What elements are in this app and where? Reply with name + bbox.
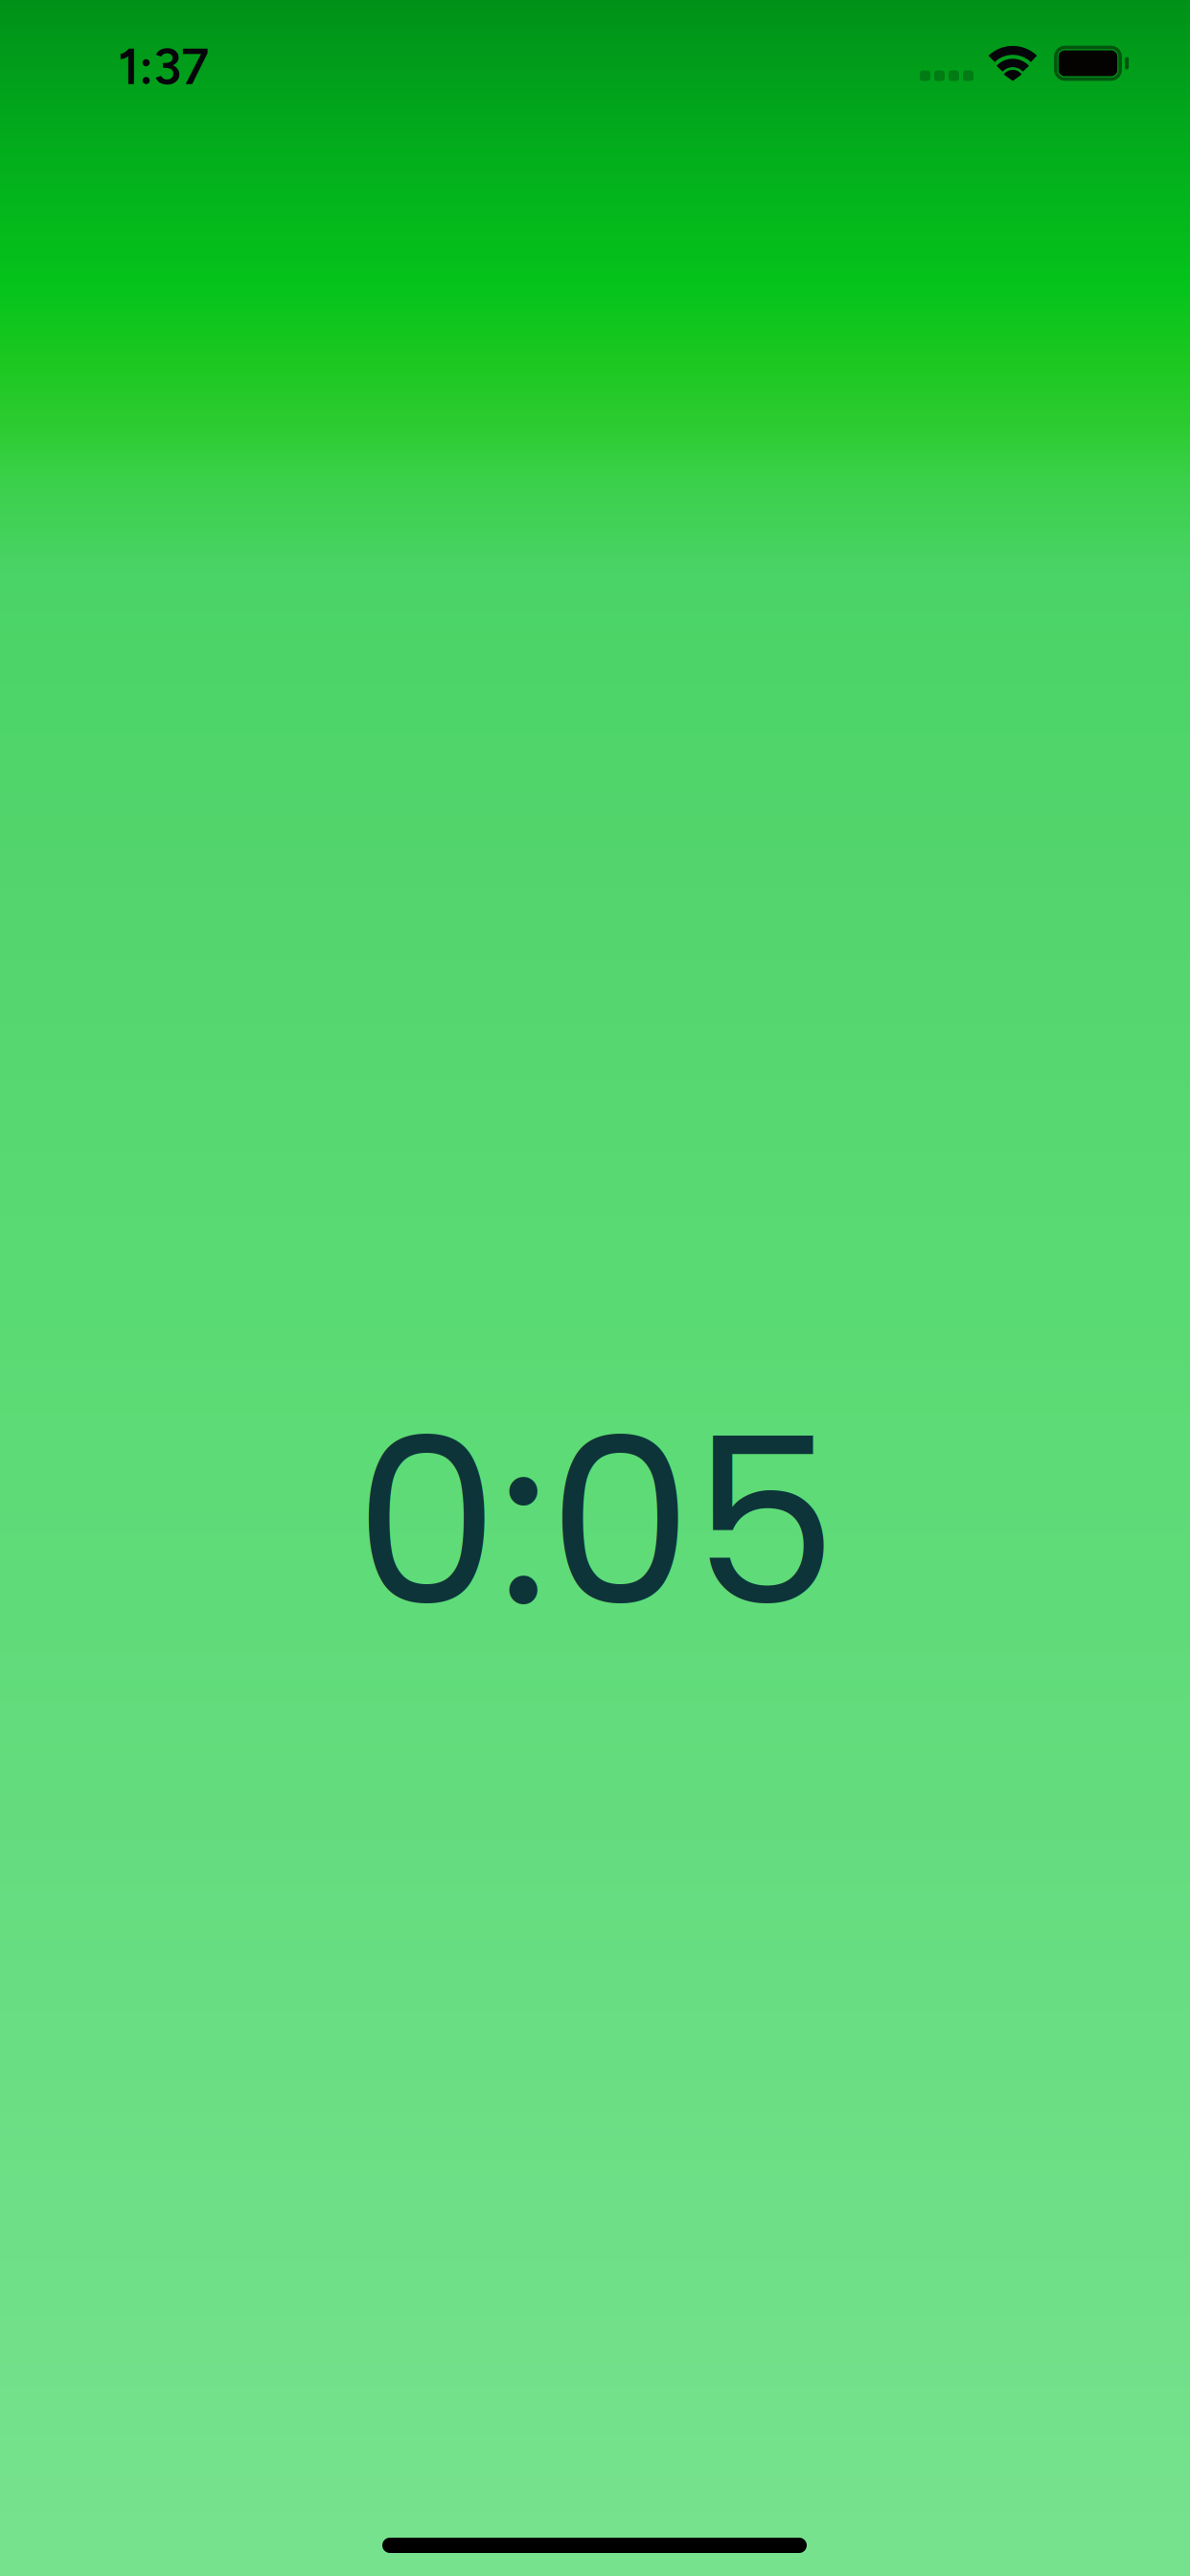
staticText: 1:37: [118, 35, 209, 97]
staticText: 0:05: [355, 1362, 837, 1684]
button[interactable]: 0:05: [355, 1362, 837, 1684]
